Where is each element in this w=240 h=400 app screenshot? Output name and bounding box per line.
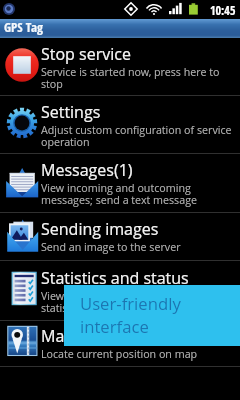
staticText: Map xyxy=(41,325,75,347)
staticText: Adjust custom configuration of service o… xyxy=(41,123,239,149)
staticText: View information about service statistic… xyxy=(41,289,239,315)
staticText: Service is started now, press here to st… xyxy=(41,65,239,91)
button[interactable]: Statistics and status xyxy=(0,261,240,320)
staticText: View incoming and outcoming messages; se… xyxy=(41,181,239,207)
staticText: User-friendly interface xyxy=(80,292,181,337)
staticText: 10:45 xyxy=(210,2,236,18)
staticText: GPS Tag xyxy=(4,18,44,36)
staticText: Statistics and status xyxy=(41,267,189,289)
staticText: Messages(1) xyxy=(41,159,133,181)
button[interactable]: Map xyxy=(0,321,240,366)
button[interactable]: Settings xyxy=(0,96,240,153)
button[interactable]: Stop service xyxy=(0,38,240,95)
button[interactable]: Messages(1) xyxy=(0,154,240,212)
button[interactable]: Sending images xyxy=(0,213,240,260)
staticText: Locate current position on map xyxy=(41,347,198,362)
staticText: Sending images xyxy=(41,218,159,240)
staticText: Send an image to the server xyxy=(41,240,181,255)
button[interactable]: GPS Tag xyxy=(0,19,240,38)
staticText: Settings xyxy=(41,101,101,123)
staticText: Stop service xyxy=(41,43,131,65)
